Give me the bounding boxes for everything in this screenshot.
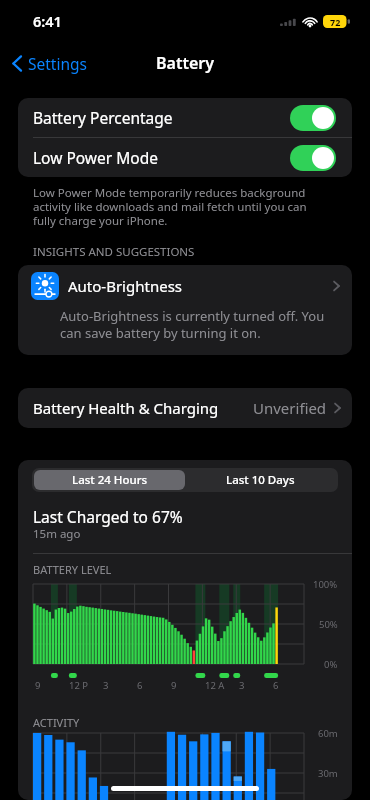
staticText: Low Power Mode temporarily reduces backg… xyxy=(33,185,310,228)
button[interactable]: Settings xyxy=(0,48,97,79)
button[interactable]: Last 10 Days xyxy=(185,470,336,490)
staticText: 50% xyxy=(319,618,338,631)
staticText: 12 A xyxy=(205,679,225,692)
staticText: 100% xyxy=(313,578,338,591)
staticText: 12 P xyxy=(69,679,89,692)
staticText: INSIGHTS AND SUGGESTIONS xyxy=(33,244,195,260)
staticText: Auto-Brightness is currently turned off.… xyxy=(60,307,340,342)
staticText: Unverified xyxy=(253,398,327,418)
button[interactable]: Toggle xyxy=(290,105,336,131)
staticText: 9 xyxy=(35,679,41,692)
staticText: 15m ago xyxy=(33,526,81,542)
staticText: 3 xyxy=(103,679,109,692)
button[interactable]: Low Power Mode xyxy=(18,138,352,177)
staticText: 6 xyxy=(137,679,143,692)
staticText: Last Charged to 67% xyxy=(33,506,183,527)
staticText: 9 xyxy=(171,679,177,692)
staticText: Last 24 Hours xyxy=(72,472,148,488)
staticText: BATTERY LEVEL xyxy=(33,562,112,577)
staticText: Battery Percentage xyxy=(33,107,173,128)
staticText: Last 10 Days xyxy=(226,472,295,488)
staticText: 60m xyxy=(318,727,338,740)
staticText: 0% xyxy=(324,658,338,671)
staticText: 6 xyxy=(273,679,279,692)
button[interactable]: Battery Percentage xyxy=(18,98,352,137)
staticText: 3 xyxy=(239,679,245,692)
staticText: Battery Health & Charging xyxy=(33,398,219,418)
button[interactable]: Auto-Brightness xyxy=(18,265,352,307)
other: Open xyxy=(334,402,341,414)
staticText: Battery xyxy=(156,52,214,74)
other: Open xyxy=(333,280,340,292)
staticText: Low Power Mode xyxy=(33,147,158,168)
staticText: ACTIVITY xyxy=(33,715,80,730)
staticText: Settings xyxy=(28,53,87,74)
button[interactable]: Battery Health & Charging xyxy=(18,388,352,428)
button[interactable]: Toggle xyxy=(290,145,336,171)
staticText: Auto-Brightness xyxy=(68,276,183,296)
staticText: 30m xyxy=(318,767,338,780)
staticText: 72 xyxy=(330,16,341,28)
button[interactable]: Last 24 Hours xyxy=(34,470,185,490)
staticText: 6:41 xyxy=(33,11,62,31)
